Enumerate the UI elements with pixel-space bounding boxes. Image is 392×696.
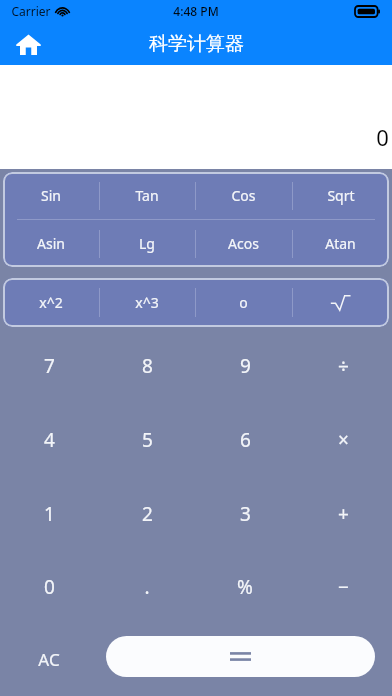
button[interactable]: 2 xyxy=(98,477,196,550)
button[interactable]: Acos xyxy=(195,220,292,267)
button[interactable]: 6 xyxy=(196,403,294,477)
button[interactable]: ÷ xyxy=(294,329,392,403)
staticText: 3 xyxy=(240,501,251,527)
button[interactable]: 9 xyxy=(196,329,294,403)
button[interactable]: 8 xyxy=(98,329,196,403)
staticText: 1 xyxy=(44,501,55,527)
button[interactable]: Sin xyxy=(3,172,99,219)
staticText: × xyxy=(338,427,349,453)
staticText: 8 xyxy=(142,353,153,379)
button[interactable]: Tan xyxy=(99,172,195,219)
button[interactable]: o xyxy=(195,278,292,327)
staticText: 0 xyxy=(44,574,55,600)
staticText: + xyxy=(338,501,349,527)
staticText: % xyxy=(237,574,253,600)
staticText: Acos xyxy=(228,234,259,253)
button[interactable]: AC xyxy=(0,623,98,696)
button[interactable]: Asin xyxy=(3,220,99,267)
button[interactable]: x^3 xyxy=(99,278,195,327)
button[interactable]: 7 xyxy=(0,329,98,403)
button[interactable]: Square root xyxy=(292,278,389,327)
staticText: 科学计算器 xyxy=(149,32,244,56)
staticText: Lg xyxy=(139,234,155,253)
staticText: 9 xyxy=(240,353,251,379)
staticText: Carrier xyxy=(11,3,51,19)
button[interactable]: × xyxy=(294,403,392,477)
staticText: AC xyxy=(38,648,60,671)
button[interactable]: Home xyxy=(7,23,49,65)
staticText: Sin xyxy=(41,186,61,205)
staticText: 4 xyxy=(44,427,55,453)
button[interactable]: 1 xyxy=(0,477,98,550)
staticText: Asin xyxy=(37,234,65,253)
staticText: x^2 xyxy=(39,293,63,312)
staticText: Atan xyxy=(325,234,356,253)
staticText: 5 xyxy=(142,427,153,453)
staticText: 7 xyxy=(44,353,55,379)
staticText: ÷ xyxy=(338,353,349,379)
button[interactable]: Lg xyxy=(99,220,195,267)
staticText: 2 xyxy=(142,501,153,527)
button[interactable]: 3 xyxy=(196,477,294,550)
staticText: Cos xyxy=(231,186,256,205)
staticText: Tan xyxy=(135,186,159,205)
staticText: 0 xyxy=(376,122,389,152)
staticText: 6 xyxy=(240,427,251,453)
button[interactable]: Atan xyxy=(292,220,389,267)
staticText: . xyxy=(144,574,150,600)
button[interactable]: 4 xyxy=(0,403,98,477)
button[interactable]: 0 xyxy=(0,550,98,623)
button[interactable]: % xyxy=(196,550,294,623)
button[interactable]: . xyxy=(98,550,196,623)
staticText: 4:48 PM xyxy=(173,3,219,19)
button[interactable]: + xyxy=(294,477,392,550)
button[interactable]: Cos xyxy=(195,172,292,219)
button[interactable]: − xyxy=(294,550,392,623)
staticText: o xyxy=(239,293,248,312)
button[interactable]: 5 xyxy=(98,403,196,477)
button[interactable]: Sqrt xyxy=(292,172,389,219)
button[interactable]: x^2 xyxy=(3,278,99,327)
staticText: Sqrt xyxy=(327,186,355,205)
button[interactable]: Equals xyxy=(106,636,375,677)
staticText: − xyxy=(338,574,349,600)
staticText: x^3 xyxy=(135,293,159,312)
